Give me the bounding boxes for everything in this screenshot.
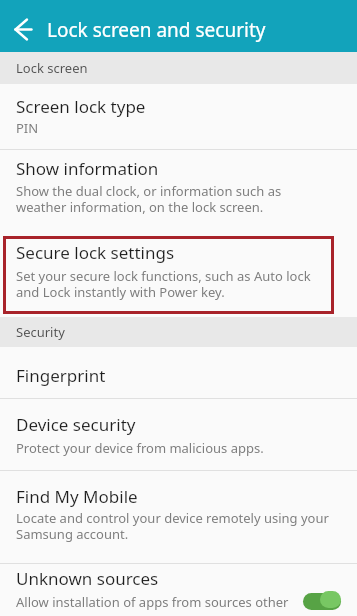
button[interactable]: Unknown sources: [0, 564, 357, 616]
staticText: Locate and control your device remotely …: [16, 509, 329, 527]
staticText: PIN: [16, 119, 39, 137]
button[interactable]: Device security: [0, 399, 357, 470]
staticText: Find My Mobile: [16, 485, 138, 508]
staticText: Show information: [16, 157, 159, 180]
staticText: and Lock instantly with Power key.: [16, 283, 225, 301]
staticText: Set your secure lock functions, such as …: [16, 267, 311, 285]
button[interactable]: [303, 593, 341, 610]
staticText: Protect your device from malicious apps.: [16, 439, 264, 457]
staticText: weather information, on the lock screen.: [16, 198, 264, 216]
staticText: Secure lock settings: [16, 241, 175, 264]
staticText: Fingerprint: [16, 364, 106, 387]
staticText: Samsung account.: [16, 525, 129, 543]
staticText: Show the dual clock, or information such…: [16, 182, 282, 200]
staticText: Screen lock type: [16, 95, 146, 118]
staticText: Allow installation of apps from sources …: [16, 593, 289, 611]
staticText: Security: [16, 323, 65, 341]
button[interactable]: Secure lock settings: [0, 236, 357, 316]
button[interactable]: [9, 16, 35, 43]
button[interactable]: Show information: [0, 150, 357, 236]
button[interactable]: Fingerprint: [0, 347, 357, 398]
button[interactable]: Find My Mobile: [0, 471, 357, 563]
button[interactable]: Screen lock type: [0, 84, 357, 149]
staticText: Device security: [16, 413, 136, 436]
staticText: Lock screen: [16, 59, 88, 77]
staticText: Lock screen and security: [47, 17, 266, 43]
staticText: Unknown sources: [16, 567, 159, 590]
